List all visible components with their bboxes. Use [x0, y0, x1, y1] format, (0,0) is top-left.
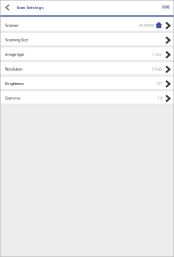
button[interactable]: Resolution	[0, 62, 174, 77]
staticText: XX-XXXXX	[139, 22, 154, 28]
staticText: Image type	[5, 52, 24, 57]
staticText: 150dpi	[151, 66, 162, 71]
button[interactable]: Brightness	[0, 77, 174, 91]
staticText: Gamma	[5, 95, 20, 101]
staticText: Scanner	[5, 22, 19, 28]
staticText: Resolution	[5, 66, 22, 71]
staticText: Scanning Size	[5, 37, 28, 42]
button[interactable]: DONE	[157, 0, 174, 15]
button[interactable]: Image type	[0, 48, 174, 62]
button[interactable]: Gamma	[0, 91, 174, 106]
staticText: Color	[152, 52, 162, 57]
staticText: 1.8	[157, 95, 162, 101]
button[interactable]: Back	[0, 0, 15, 15]
button[interactable]: Scanner	[0, 18, 174, 33]
staticText: Brightness	[5, 81, 24, 86]
staticText: 127	[156, 81, 162, 86]
button[interactable]: Scanning Size	[0, 33, 174, 48]
staticText: DONE	[162, 6, 169, 9]
staticText: Scan Settings	[16, 5, 43, 10]
